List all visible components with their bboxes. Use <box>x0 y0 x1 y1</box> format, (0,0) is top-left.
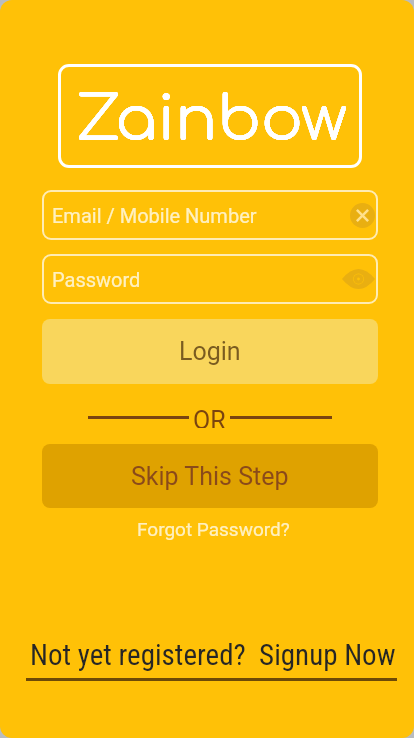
button[interactable]: Not yet registered? Signup Now <box>0 636 414 681</box>
other: Show password <box>342 269 375 289</box>
staticText: Zainbow <box>76 85 348 154</box>
staticText: Zainbow <box>76 85 348 154</box>
staticText: OR <box>193 406 226 428</box>
staticText: Not yet registered? Signup Now <box>30 638 396 672</box>
staticText: Zainbow <box>76 85 348 154</box>
other: Clear <box>350 203 375 228</box>
button[interactable]: Skip This Step <box>42 444 378 508</box>
staticText: Password <box>52 268 141 291</box>
button[interactable]: Forgot Password? <box>133 514 294 544</box>
staticText: Email / Mobile Number <box>52 204 257 227</box>
button[interactable]: Email / Mobile Number <box>42 190 378 240</box>
staticText: Login <box>179 337 241 366</box>
button[interactable]: Password <box>42 254 378 304</box>
staticText: Skip This Step <box>131 462 289 491</box>
button[interactable]: Login <box>42 319 378 384</box>
